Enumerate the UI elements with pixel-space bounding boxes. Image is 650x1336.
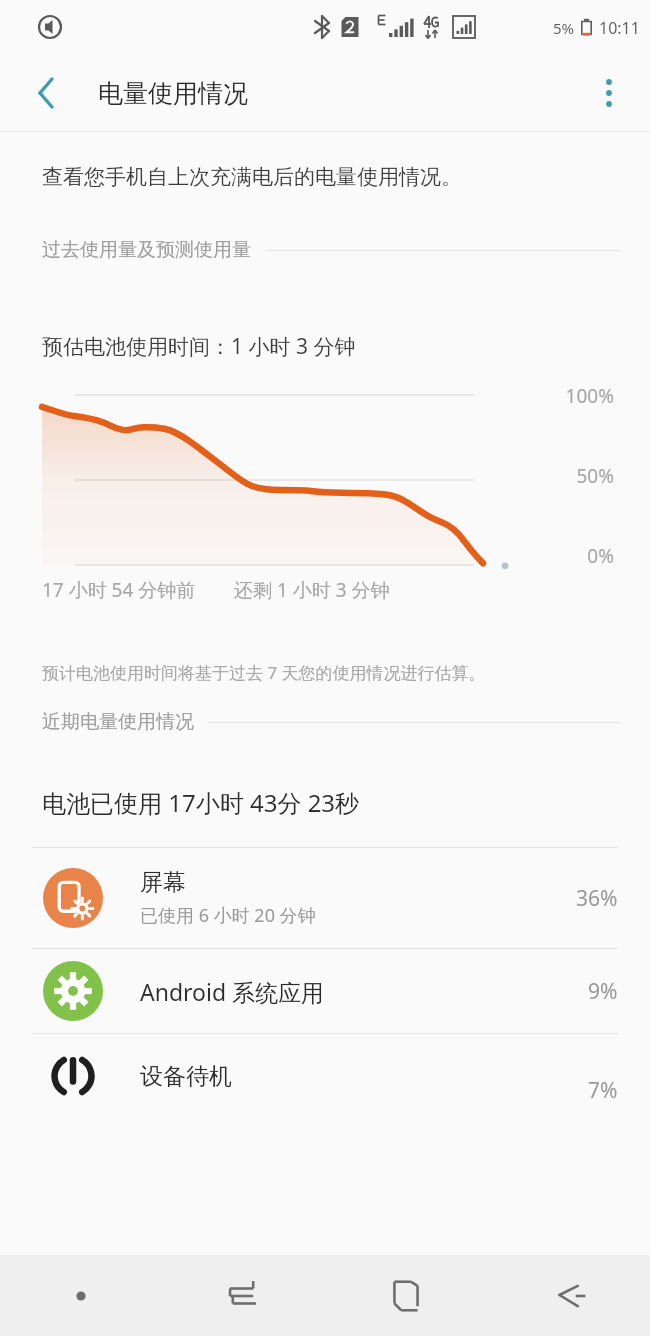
staticText: 17 小时 54 分钟前 (42, 577, 196, 603)
staticText: 过去使用量及预测使用量 (42, 238, 251, 262)
staticText: Android 系统应用 (140, 976, 325, 1007)
button[interactable]: More options (584, 68, 634, 118)
staticText: 设备待机 (140, 1062, 232, 1091)
button[interactable]: Menu dot (0, 1255, 162, 1336)
staticText: 5% (553, 18, 575, 38)
staticText: 还剩 1 小时 3 分钟 (234, 577, 390, 603)
staticText: 100% (565, 383, 614, 409)
button[interactable]: Back (20, 67, 72, 119)
staticText: 50% (576, 463, 614, 489)
staticText: 电量使用情况 (98, 78, 248, 109)
button[interactable]: Android 系统应用 (0, 949, 650, 1033)
staticText: 9% (588, 977, 618, 1006)
button[interactable]: Back (487, 1255, 650, 1336)
staticText: 近期电量使用情况 (42, 710, 194, 734)
staticText: 已使用 6 小时 20 分钟 (140, 903, 316, 928)
staticText: 预计电池使用时间将基于过去 7 天您的使用情况进行估算。 (42, 661, 486, 684)
staticText: 36% (576, 884, 618, 913)
staticText: 屏幕 (140, 868, 186, 897)
button[interactable]: Home (324, 1255, 487, 1336)
button[interactable]: 屏幕 (0, 848, 650, 948)
button[interactable]: 设备待机 (0, 1034, 650, 1118)
staticText: 7% (588, 1076, 618, 1105)
staticText: 电池已使用 17小时 43分 23秒 (42, 786, 360, 819)
staticText: 0% (587, 543, 614, 569)
staticText: 查看您手机自上次充满电后的电量使用情况。 (42, 164, 462, 190)
staticText: 预估电池使用时间：1 小时 3 分钟 (42, 332, 356, 361)
staticText: 10:11 (599, 17, 640, 39)
button[interactable]: Recent apps (162, 1255, 324, 1336)
